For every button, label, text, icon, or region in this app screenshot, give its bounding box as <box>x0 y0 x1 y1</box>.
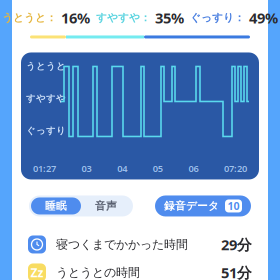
staticText: うとうと <box>26 60 66 72</box>
staticText: 35% <box>155 8 184 27</box>
staticText: 睡眠 <box>45 199 67 212</box>
button[interactable]: 睡眠 <box>31 197 81 214</box>
staticText: 寝つくまでかかった時間 <box>56 237 188 252</box>
button[interactable]: 録音データ <box>155 195 251 216</box>
staticText: 07:20 <box>224 162 247 174</box>
staticText: ぐっすり： <box>190 11 245 24</box>
staticText: すやすや： <box>96 11 151 24</box>
staticText: うとうとの時間 <box>56 265 140 280</box>
staticText: ぐっすり <box>26 125 66 136</box>
staticText: 03 <box>82 162 92 174</box>
staticText: 16% <box>61 8 90 27</box>
staticText: 04 <box>117 162 127 174</box>
staticText: 10 <box>227 199 239 213</box>
staticText: 05 <box>153 162 163 174</box>
staticText: 49% <box>249 8 278 27</box>
staticText: 06 <box>188 162 198 174</box>
staticText: 01:27 <box>33 162 56 174</box>
staticText: 51分 <box>221 263 252 280</box>
staticText: すやすや <box>26 93 66 104</box>
button[interactable]: 音声 <box>81 197 131 214</box>
staticText: 音声 <box>95 199 117 212</box>
button[interactable]: 寝つくまでかかった時間 <box>12 230 268 258</box>
staticText: 29分 <box>221 235 252 254</box>
staticText: 録音データ <box>164 199 219 212</box>
button[interactable]: Zz <box>12 258 268 280</box>
staticText: Zz <box>30 264 43 280</box>
staticText: うとうと： <box>2 11 57 24</box>
